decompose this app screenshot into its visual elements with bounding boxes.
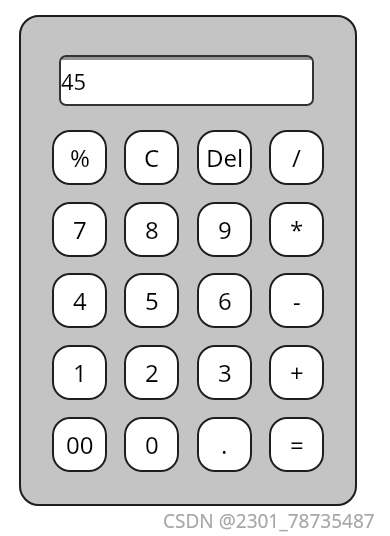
button[interactable]: Del	[197, 130, 252, 185]
staticText: 6	[218, 284, 232, 317]
staticText: 0	[145, 428, 159, 461]
button[interactable]: -	[269, 273, 324, 328]
button[interactable]: 7	[52, 202, 107, 257]
staticText: Del	[206, 141, 244, 174]
button[interactable]: 6	[197, 273, 252, 328]
staticText: 5	[145, 284, 159, 317]
button[interactable]: 00	[52, 417, 107, 472]
staticText: 9	[218, 213, 232, 246]
button[interactable]: +	[269, 345, 324, 400]
staticText: /	[292, 141, 301, 174]
button[interactable]: 5	[124, 273, 179, 328]
button[interactable]: =	[269, 417, 324, 472]
button[interactable]: 3	[197, 345, 252, 400]
button[interactable]: 2	[124, 345, 179, 400]
staticText: 7	[73, 213, 87, 246]
staticText: CSDN @2301_78735487	[163, 508, 375, 534]
button[interactable]: 0	[124, 417, 179, 472]
button[interactable]: 4	[52, 273, 107, 328]
staticText: .	[221, 428, 228, 461]
staticText: =	[290, 428, 304, 461]
button[interactable]: *	[269, 202, 324, 257]
staticText: -	[293, 284, 301, 317]
button[interactable]: 8	[124, 202, 179, 257]
staticText: C	[144, 141, 160, 174]
staticText: 8	[145, 213, 159, 246]
staticText: 3	[218, 356, 232, 389]
button[interactable]: C	[124, 130, 179, 185]
button[interactable]: .	[197, 417, 252, 472]
staticText: %	[70, 141, 90, 174]
button[interactable]: 1	[52, 345, 107, 400]
button[interactable]: %	[52, 130, 107, 185]
staticText: 2	[145, 356, 159, 389]
staticText: 00	[66, 428, 94, 461]
staticText: *	[290, 213, 304, 246]
button[interactable]: /	[269, 130, 324, 185]
staticText: 1	[73, 356, 87, 389]
button[interactable]: 9	[197, 202, 252, 257]
staticText: 45	[61, 66, 87, 96]
staticText: +	[290, 356, 304, 389]
staticText: 4	[73, 284, 87, 317]
